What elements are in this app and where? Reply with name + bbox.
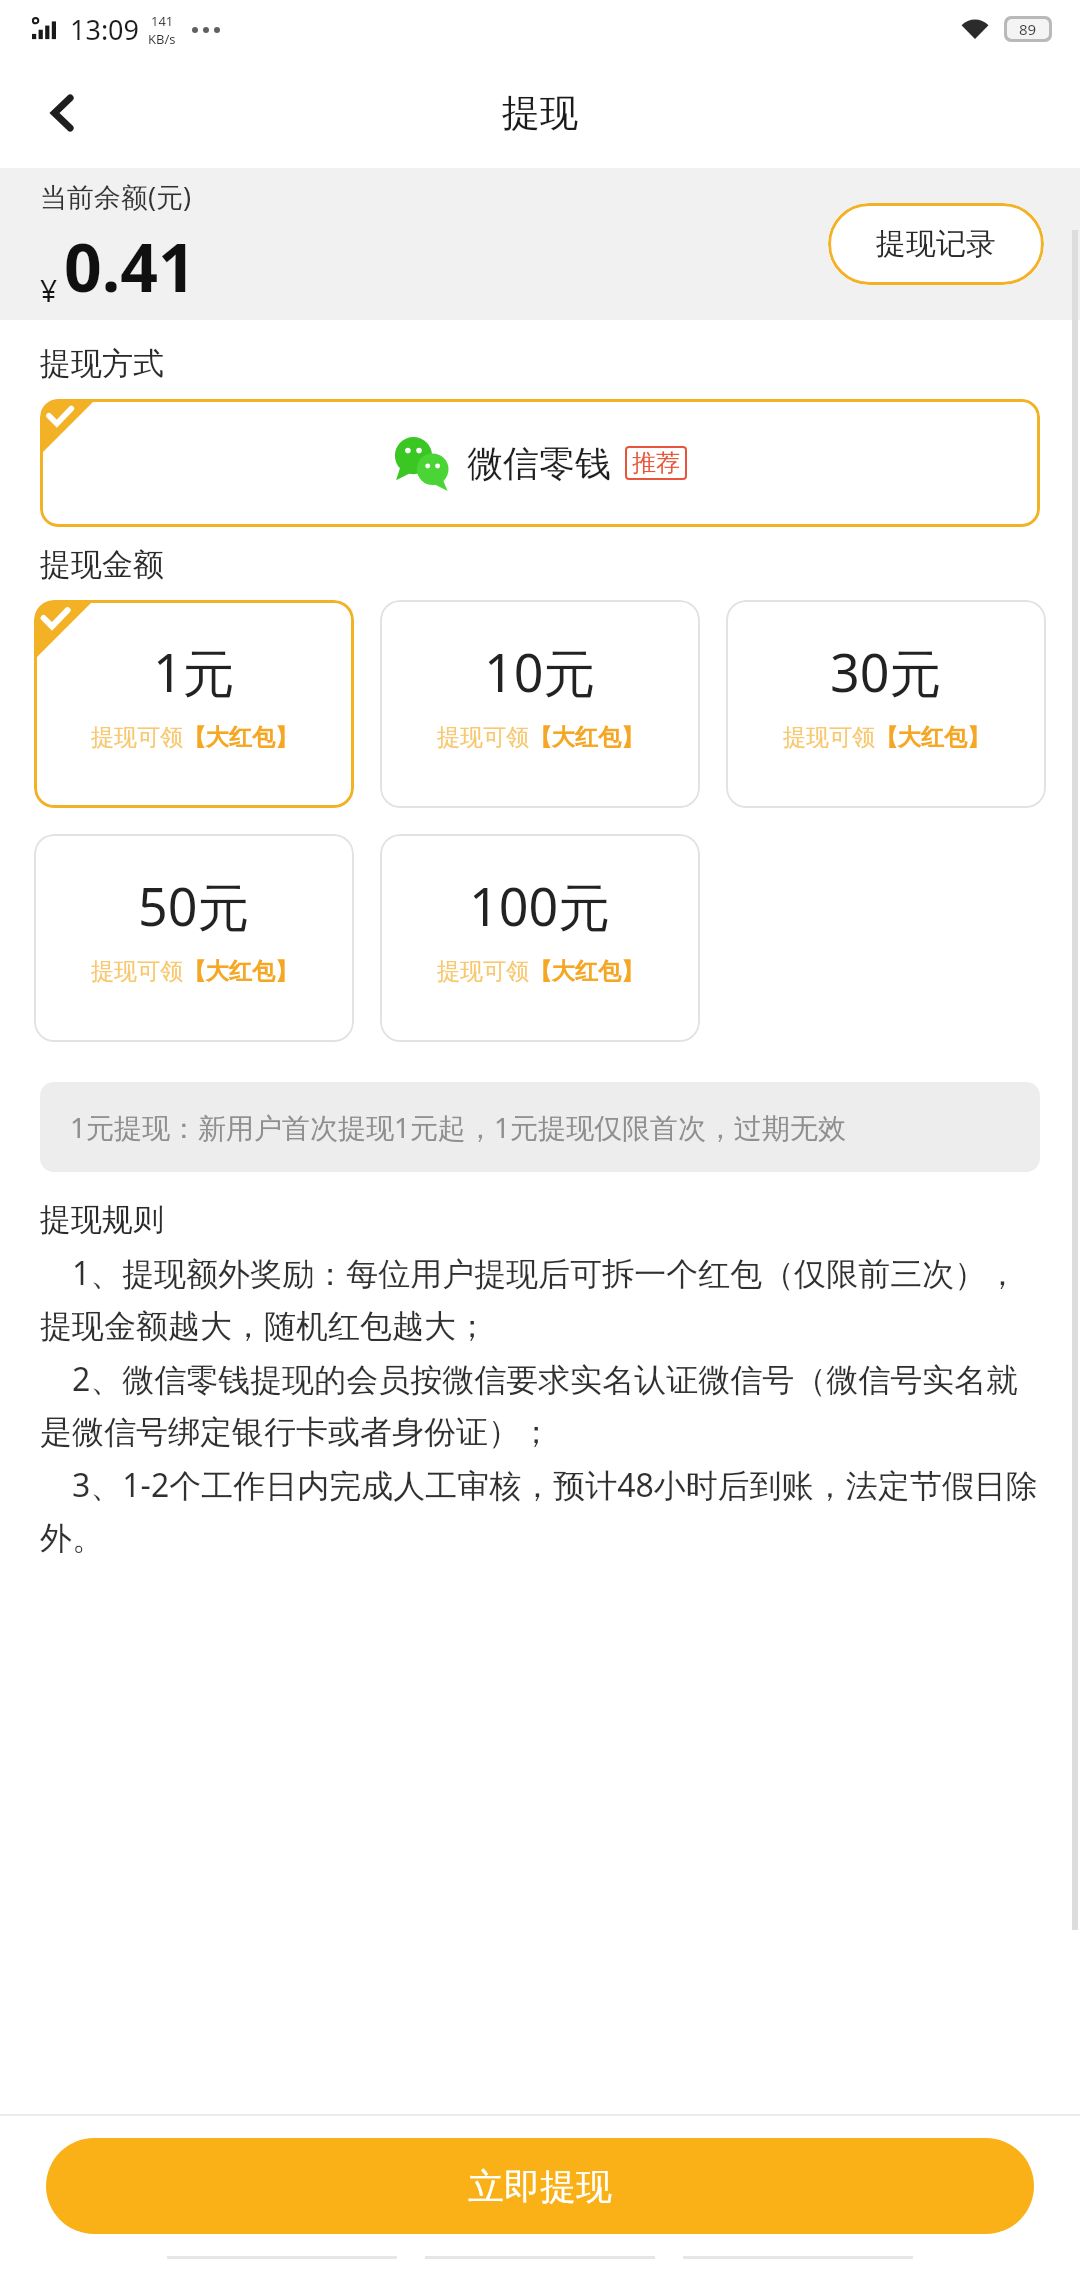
staticText: 13:09 [70,11,140,48]
staticText: 1元提现：新用户首次提现1元起，1元提现仅限首次，过期无效 [70,1108,847,1146]
button[interactable]: 30元 [726,600,1046,808]
button[interactable]: 100元 [380,834,700,1042]
staticText: 0.41 [64,221,196,311]
staticText: 提现可领【大红包】 [437,723,644,752]
staticText: 提现 [502,89,578,137]
staticText: 89 [1019,19,1037,39]
staticText: 1元 [153,636,235,707]
button[interactable]: 10元 [380,600,700,808]
staticText: 提现可领【大红包】 [783,723,990,752]
button[interactable]: 1元 [34,600,354,808]
staticText: KB/s [148,30,176,48]
staticText: 提现规则 [40,1200,164,1239]
staticText: 提现可领【大红包】 [437,957,644,986]
staticText: ¥ [40,270,58,311]
staticText: 10元 [484,636,596,707]
staticText: 30元 [830,636,942,707]
staticText: 提现可领【大红包】 [91,723,298,752]
button[interactable]: Back [28,77,100,149]
button[interactable]: 提现记录 [828,203,1044,285]
staticText: 微信零钱 [467,441,611,486]
staticText: 提现金额 [40,545,164,584]
staticText: 立即提现 [468,2164,612,2209]
staticText: 提现记录 [876,225,996,263]
staticText: 提现方式 [40,344,164,383]
staticText: 提现可领【大红包】 [91,957,298,986]
staticText: 50元 [138,870,250,941]
button[interactable]: 微信零钱 [40,399,1040,527]
button[interactable]: 立即提现 [46,2138,1034,2234]
staticText: 1、提现额外奖励：每位用户提现后可拆一个红包（仅限前三次），提现金额越大，随机红… [40,1251,1040,1558]
staticText: 推荐 [632,448,680,478]
button[interactable]: 50元 [34,834,354,1042]
staticText: 141 [151,12,174,30]
staticText: 当前余额(元) [40,178,192,215]
staticText: 100元 [469,870,611,941]
